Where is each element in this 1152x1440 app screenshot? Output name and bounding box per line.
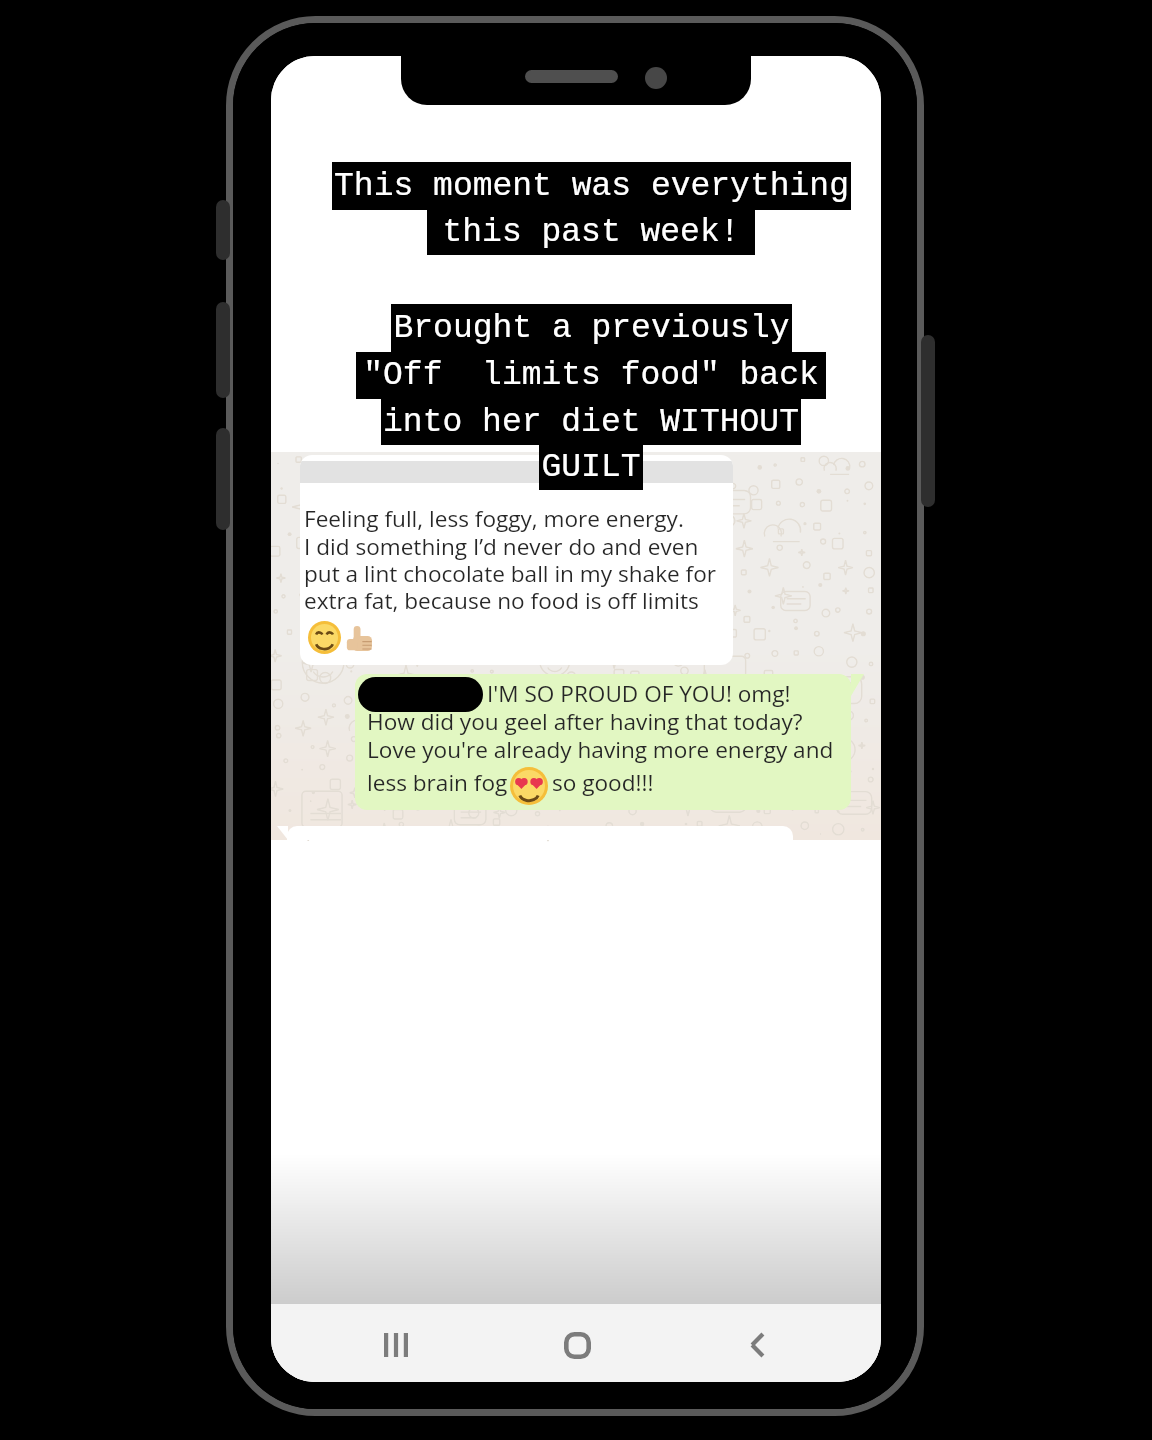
staticText: GUILT: [541, 449, 641, 486]
button[interactable]: I'M SO PROUD OF YOU! omg!: [355, 674, 851, 810]
staticText: "Off limits food" back: [363, 357, 819, 394]
staticText: Feeling full, less foggy, more energy. I…: [304, 503, 716, 615]
staticText: This moment was everything: [334, 168, 849, 205]
button[interactable]: Feeling full, less foggy, more energy. I…: [300, 455, 733, 665]
staticText: How did you geel after having that today…: [367, 706, 803, 737]
staticText: Brought a previously: [393, 310, 790, 347]
staticText: into her diet WITHOUT: [383, 404, 799, 441]
button[interactable]: Back: [723, 1311, 791, 1379]
staticText: so good!!!: [552, 767, 654, 798]
button[interactable]: Recent apps: [362, 1311, 430, 1379]
staticText: Love you're already having more energy a…: [367, 734, 834, 765]
button[interactable]: Home: [543, 1311, 611, 1379]
staticText: less brain fog: [367, 767, 508, 798]
staticText: this past week!: [442, 214, 740, 251]
staticText: I'M SO PROUD OF YOU! omg!: [487, 678, 791, 709]
